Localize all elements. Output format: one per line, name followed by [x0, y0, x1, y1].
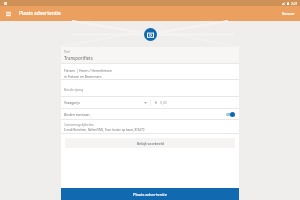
- staticText: Bieden toestaan: [64, 112, 90, 117]
- button[interactable]: Bekijk voorbeeld: [65, 138, 235, 148]
- button[interactable]: Plaats advertentie: [61, 188, 239, 200]
- button[interactable]: Open navigation menu: [0, 6, 17, 21]
- button[interactable]: Vraagprijs: [61, 97, 150, 108]
- staticText: 0,00: [160, 100, 167, 105]
- staticText: 2:21: [291, 1, 298, 6]
- staticText: Plaats advertentie: [19, 10, 61, 17]
- staticText: €: [155, 100, 158, 105]
- staticText: Fietsen | Heren / Herenfietsen: [64, 68, 112, 73]
- staticText: Contactmogelijkheden: [64, 123, 94, 127]
- button[interactable]: Beschrijving: [61, 80, 239, 96]
- staticText: in Fietsen en Brommers: [64, 74, 102, 79]
- button[interactable]: Titel: [61, 47, 239, 63]
- button[interactable]: Contactmogelijkheden: [61, 120, 239, 133]
- staticText: Transportfiets: [64, 55, 93, 61]
- staticText: Titel: [64, 50, 70, 54]
- staticText: Vraagprijs: [64, 100, 80, 105]
- button[interactable]: Bieden toestaan: [61, 109, 239, 119]
- button[interactable]: Bewaar: [277, 7, 300, 20]
- button[interactable]: Add photo: [144, 28, 157, 41]
- staticText: Plaats advertentie: [133, 192, 167, 197]
- staticText: Beschrijving: [64, 87, 84, 92]
- staticText: Bewaar: [282, 11, 295, 16]
- button[interactable]: €: [151, 97, 239, 108]
- button[interactable]: Fietsen | Heren / Herenfietsen: [61, 64, 239, 79]
- staticText: Bekijk voorbeeld: [137, 141, 164, 146]
- staticText: E-mail/Berichten, Bellen/SMS, Toon locat…: [64, 128, 145, 132]
